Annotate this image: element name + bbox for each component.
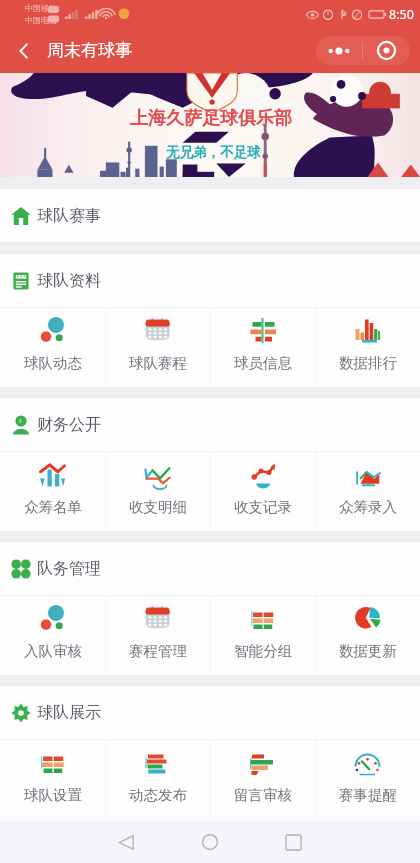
staticText: 球员信息 [234, 354, 292, 372]
staticText: 留言审核 [234, 786, 292, 804]
button[interactable]: Home [188, 821, 232, 863]
staticText: 球队赛事 [37, 206, 101, 226]
staticText: 球队展示 [37, 703, 101, 723]
button[interactable]: 球队展示 [0, 686, 420, 739]
staticText: 众筹名单 [24, 498, 82, 516]
staticText: 财务公开 [37, 415, 101, 435]
button[interactable]: 众筹录入 [315, 452, 420, 531]
button[interactable]: Back [104, 821, 148, 863]
staticText: 中国电信 [25, 15, 57, 25]
staticText: 入队审核 [24, 642, 82, 660]
staticText: 赛程管理 [129, 642, 187, 660]
staticText: 收支明细 [129, 498, 187, 516]
staticText: 队务管理 [37, 559, 101, 579]
staticText: 数据排行 [339, 354, 397, 372]
staticText: 球队设置 [24, 786, 82, 804]
button[interactable]: 球队赛程 [105, 308, 210, 387]
button[interactable]: 球队动态 [0, 308, 105, 387]
button[interactable]: 球员信息 [210, 308, 315, 387]
button[interactable]: 动态发布 [105, 740, 210, 819]
button[interactable]: More options [316, 36, 410, 65]
button[interactable]: 收支明细 [105, 452, 210, 531]
button[interactable]: 球队资料 [0, 254, 420, 307]
staticText: 收支记录 [234, 498, 292, 516]
button[interactable]: Back [8, 35, 40, 67]
button[interactable]: Recents [271, 821, 315, 863]
button[interactable]: 赛程管理 [105, 596, 210, 675]
staticText: 8:50 [389, 6, 414, 23]
staticText: 赛事提醒 [339, 786, 397, 804]
staticText: 众筹录入 [339, 498, 397, 516]
button[interactable]: 众筹名单 [0, 452, 105, 531]
button[interactable]: 赛事提醒 [315, 740, 420, 819]
staticText: 球队动态 [24, 354, 82, 372]
button[interactable]: 留言审核 [210, 740, 315, 819]
button[interactable]: 球队设置 [0, 740, 105, 819]
button[interactable]: 球队赛事 [0, 189, 420, 242]
button[interactable]: 队务管理 [0, 542, 420, 595]
staticText: 数据更新 [339, 642, 397, 660]
button[interactable]: 智能分组 [210, 596, 315, 675]
staticText: 无兄弟，不足球 [166, 144, 261, 161]
staticText: 动态发布 [129, 786, 187, 804]
staticText: 智能分组 [234, 642, 292, 660]
button[interactable]: 财务公开 [0, 398, 420, 451]
staticText: 上海久萨足球俱乐部 [130, 107, 292, 130]
button[interactable]: 数据排行 [315, 308, 420, 387]
staticText: 中国移动 [25, 3, 57, 13]
button[interactable]: 数据更新 [315, 596, 420, 675]
staticText: 周末有球事 [47, 40, 132, 61]
button[interactable]: 收支记录 [210, 452, 315, 531]
staticText: 球队赛程 [129, 354, 187, 372]
staticText: 球队资料 [37, 271, 101, 291]
button[interactable]: 入队审核 [0, 596, 105, 675]
